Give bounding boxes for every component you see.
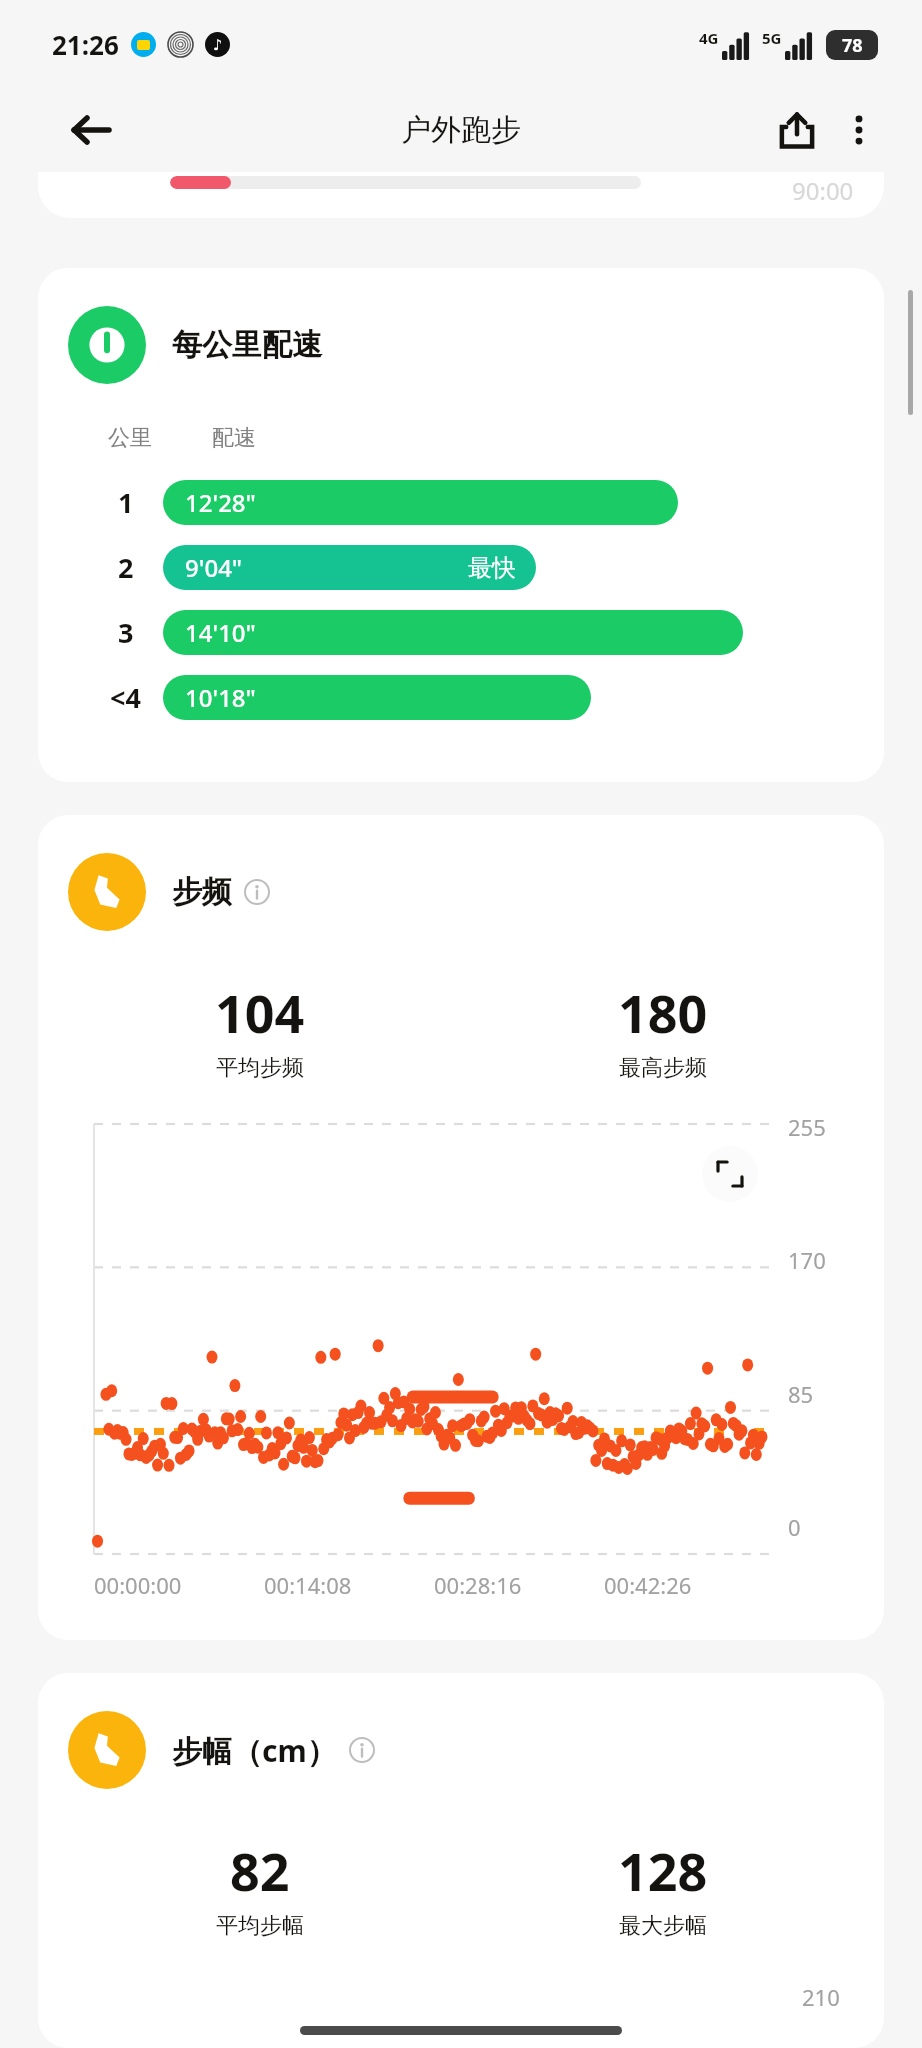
button[interactable]: 每公里配速 — [38, 268, 884, 782]
button[interactable]: 步幅（cm） — [38, 1673, 884, 2048]
staticText: 00:28:16 — [434, 1570, 522, 1600]
staticText: <4 — [110, 679, 141, 716]
staticText: 82 — [230, 1835, 290, 1906]
button[interactable]: 步频 — [38, 815, 884, 1640]
staticText: 78 — [842, 33, 863, 58]
staticText: 配速 — [212, 424, 256, 452]
staticText: 最高步频 — [619, 1054, 707, 1082]
button[interactable]: Expand chart — [702, 1146, 758, 1202]
staticText: 14'10" — [185, 616, 256, 649]
staticText: 90:00 — [792, 174, 854, 207]
button[interactable]: Share — [766, 99, 828, 161]
staticText: 平均步频 — [216, 1054, 304, 1082]
staticText: 每公里配速 — [172, 326, 322, 364]
staticText: ♪ — [213, 36, 223, 53]
staticText: 最快 — [468, 553, 516, 583]
staticText: 公里 — [108, 424, 152, 452]
staticText: 00:00:00 — [94, 1570, 182, 1600]
staticText: 平均步幅 — [216, 1912, 304, 1940]
staticText: 10'18" — [185, 681, 256, 714]
staticText: 9'04" — [185, 551, 243, 584]
staticText: 1 — [118, 484, 134, 521]
staticText: 21:26 — [52, 27, 119, 62]
staticText: 00:42:26 — [604, 1570, 692, 1600]
staticText: 128 — [618, 1835, 708, 1906]
staticText: 210 — [802, 1982, 840, 2012]
staticText: 最大步幅 — [619, 1912, 707, 1940]
staticText: 4G — [699, 28, 719, 48]
staticText: 00:14:08 — [264, 1570, 352, 1600]
button[interactable]: Back — [60, 99, 122, 161]
staticText: 170 — [788, 1245, 826, 1275]
staticText: 104 — [215, 977, 305, 1048]
staticText: 0 — [788, 1512, 801, 1542]
button[interactable]: More options — [828, 99, 890, 161]
staticText: 85 — [788, 1379, 814, 1409]
staticText: 255 — [788, 1112, 826, 1142]
staticText: 12'28" — [185, 486, 256, 519]
staticText: 步幅（cm） — [172, 1730, 337, 1771]
staticText: 5G — [762, 28, 782, 48]
staticText: 2 — [118, 549, 134, 586]
staticText: 180 — [618, 977, 708, 1048]
staticText: 步频 — [172, 873, 232, 911]
staticText: 户外跑步 — [401, 111, 521, 149]
staticText: 3 — [118, 614, 134, 651]
button[interactable]: 90:00 — [38, 172, 884, 218]
